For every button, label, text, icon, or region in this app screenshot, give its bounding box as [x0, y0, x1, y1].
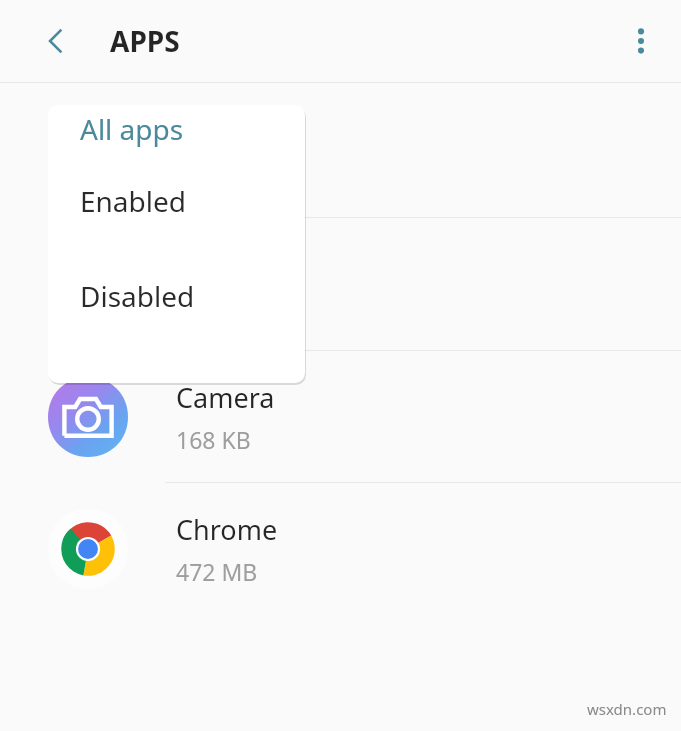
staticText: Calculator	[176, 112, 305, 149]
button[interactable]: Disabled	[48, 248, 305, 343]
button[interactable]: Chrome	[0, 483, 681, 614]
button[interactable]: All apps	[48, 105, 305, 153]
button[interactable]: Back	[28, 13, 84, 69]
staticText: Camera	[176, 379, 275, 416]
staticText: Chrome	[176, 511, 278, 548]
button[interactable]: Enabled	[48, 153, 305, 248]
staticText: Enabled	[80, 182, 187, 220]
staticText: 168 KB	[176, 424, 251, 455]
button[interactable]: Calculator	[0, 83, 681, 217]
staticText: Disabled	[80, 277, 195, 315]
staticText: 472 MB	[176, 556, 258, 587]
staticText: All apps	[80, 110, 184, 148]
staticText: APPS	[110, 22, 180, 60]
staticText: 124 KB	[176, 291, 251, 322]
button[interactable]: Calendar	[0, 218, 681, 350]
button[interactable]: More options	[613, 13, 669, 69]
button[interactable]: Camera	[0, 351, 681, 482]
staticText: wsxdn.com	[587, 699, 667, 719]
